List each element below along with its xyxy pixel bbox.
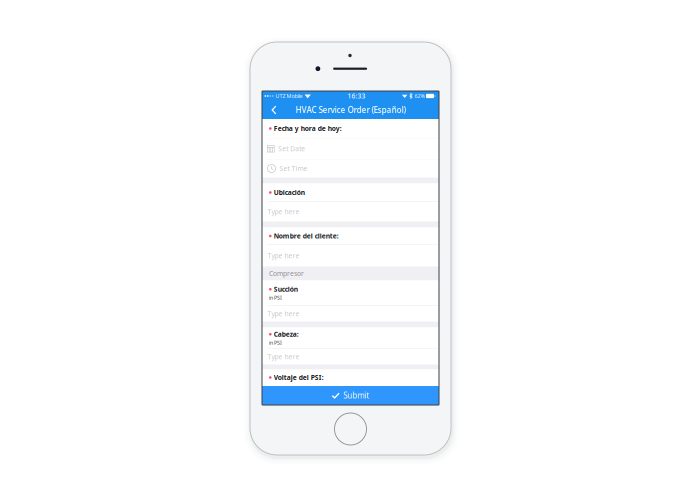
- button[interactable]: Submit: [262, 386, 439, 405]
- staticText: 16:33: [347, 92, 365, 100]
- button[interactable]: Type here: [262, 202, 439, 221]
- button[interactable]: Type here: [262, 306, 439, 321]
- button[interactable]: Set Time: [262, 159, 439, 177]
- staticText: Ubicación: [274, 188, 305, 197]
- staticText: Type here: [267, 207, 299, 216]
- staticText: Submit: [343, 390, 369, 401]
- staticText: Cabeza:: [274, 330, 299, 339]
- staticText: Compresor: [269, 269, 304, 278]
- button[interactable]: Type here: [262, 349, 439, 364]
- staticText: Type here: [267, 352, 299, 361]
- staticText: Voltaje del PSI:: [274, 373, 324, 382]
- staticText: 62%: [414, 92, 424, 100]
- button[interactable]: Type here: [262, 245, 439, 266]
- staticText: in PSI: [269, 339, 282, 346]
- button[interactable]: Back: [262, 101, 286, 119]
- staticText: in PSI: [269, 294, 282, 301]
- staticText: Fecha y hora de hoy:: [274, 124, 342, 133]
- staticText: Set Time: [280, 164, 308, 173]
- staticText: Type here: [267, 251, 299, 260]
- staticText: HVAC Service Order (Español): [295, 105, 405, 115]
- staticText: Nombre del cliente:: [274, 232, 339, 240]
- staticText: Set Date: [278, 144, 305, 153]
- staticText: Succión: [274, 285, 298, 294]
- staticText: Type here: [267, 309, 299, 318]
- staticText: UTZ Mobile: [275, 92, 302, 100]
- button[interactable]: Set Date: [262, 138, 439, 159]
